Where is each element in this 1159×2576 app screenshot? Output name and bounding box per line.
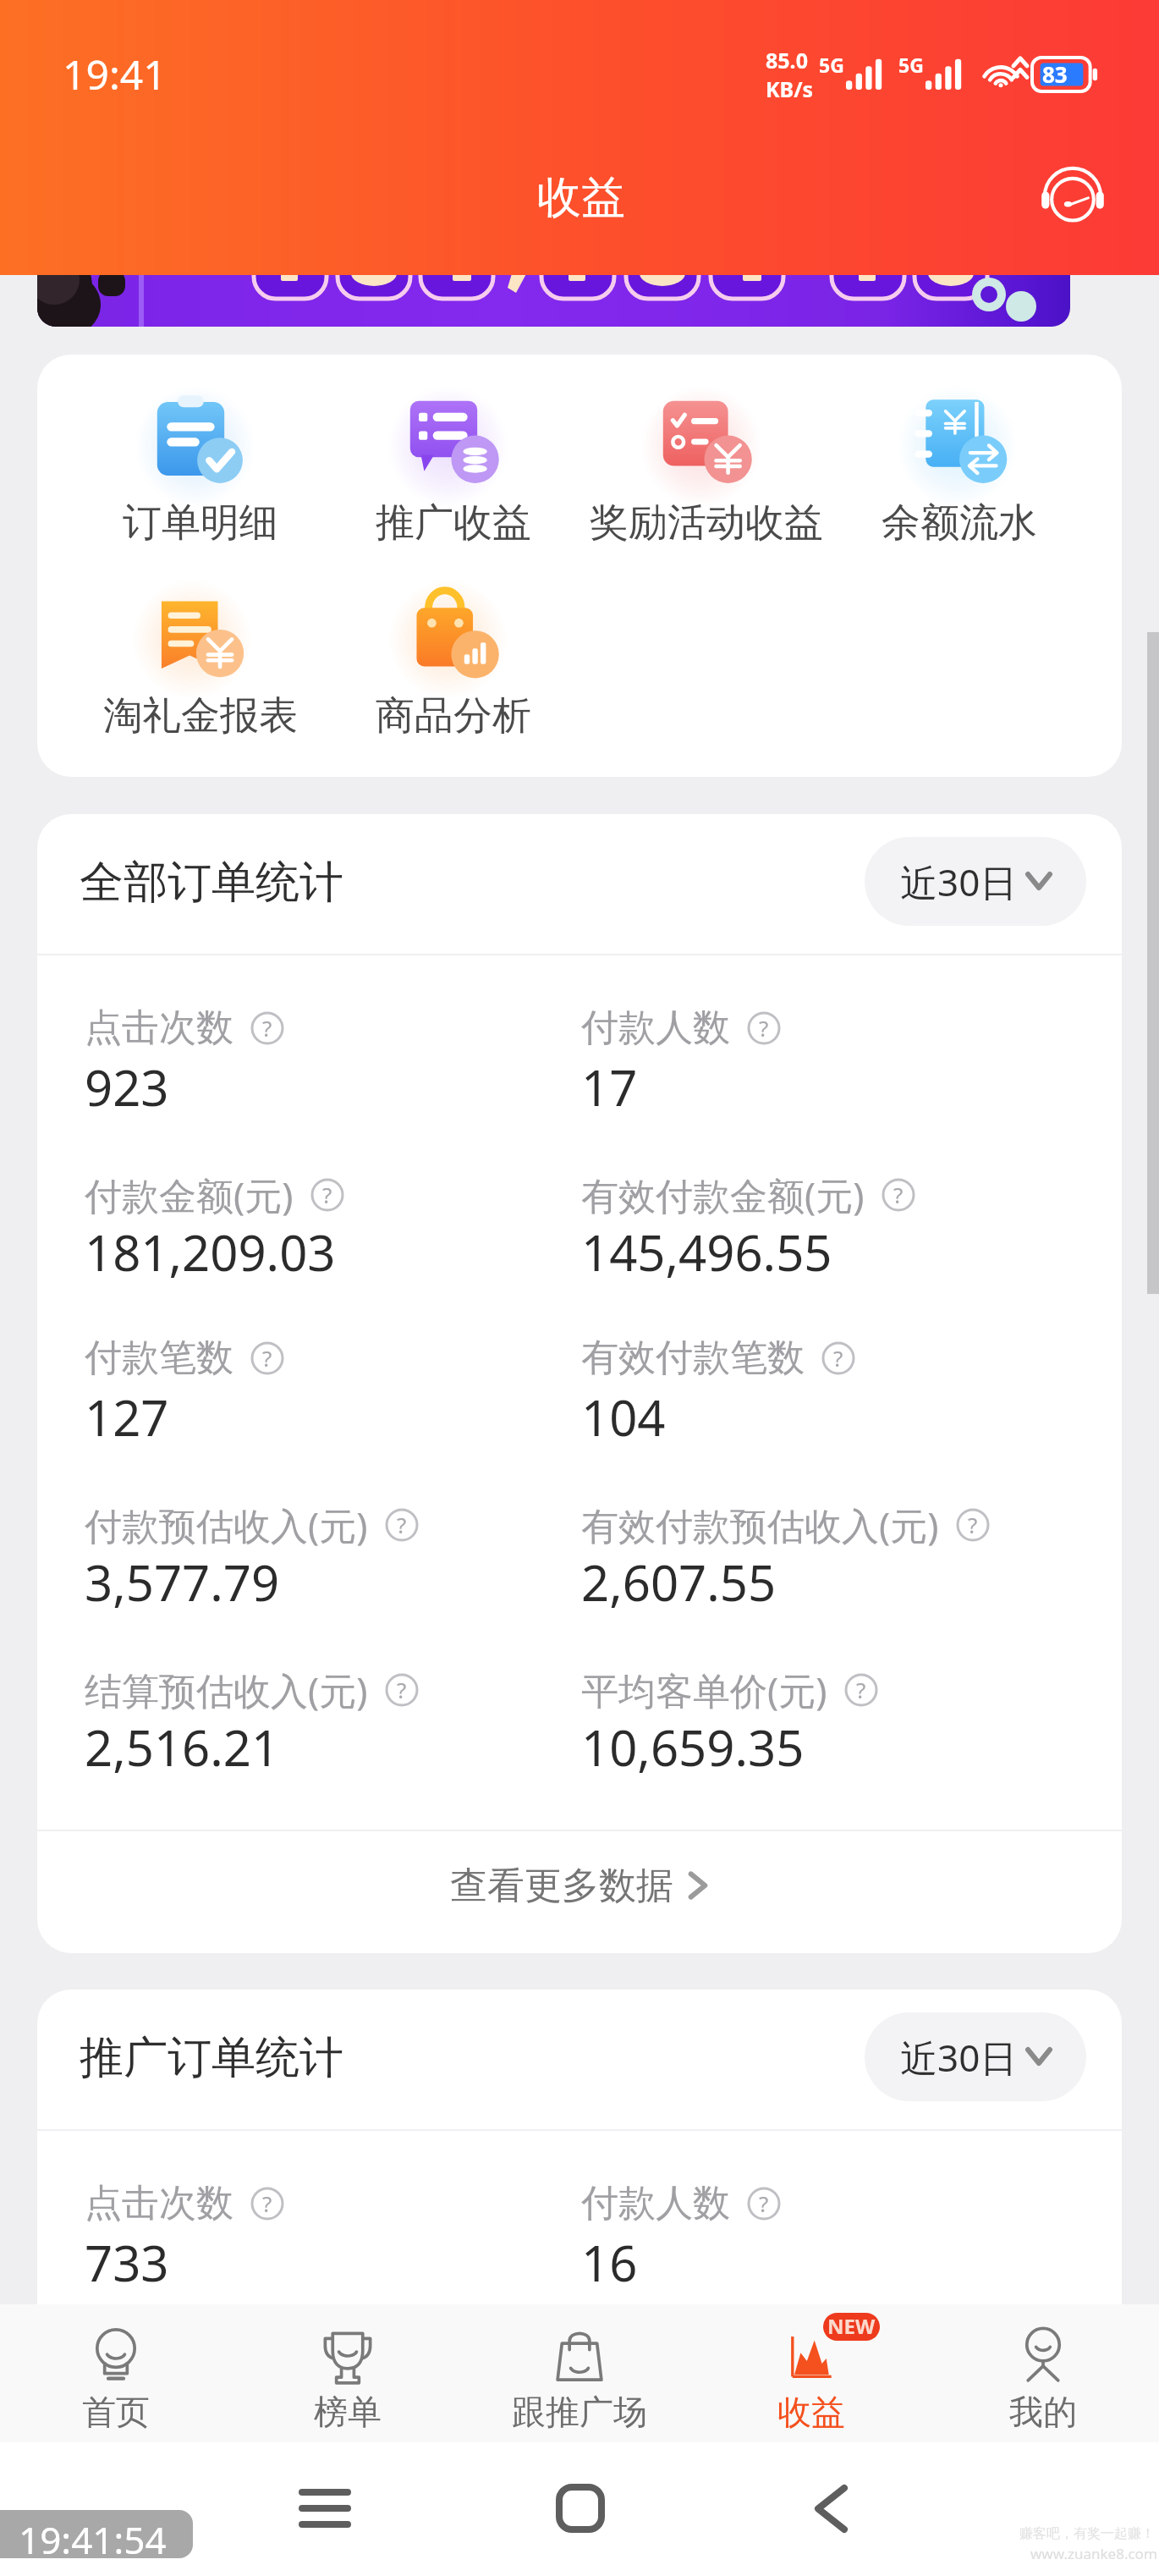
button[interactable]: Info <box>250 1011 284 1045</box>
staticText: 19:41:54 <box>19 2514 167 2558</box>
staticText: 近30日 <box>900 856 1018 907</box>
staticText: ? <box>262 1343 272 1373</box>
staticText: 85.0 <box>766 46 808 74</box>
staticText: ? <box>759 2188 769 2218</box>
staticText: 104 <box>581 1384 666 1450</box>
staticText: 余额流水 <box>882 498 1037 548</box>
staticText: ? <box>833 1343 843 1373</box>
staticText: 19:41 <box>63 47 167 102</box>
staticText: 赚客吧，有奖一起赚！ <box>1019 2525 1155 2542</box>
staticText: ? <box>856 1675 866 1704</box>
button[interactable]: Info <box>385 1508 419 1542</box>
button[interactable]: Info <box>747 2187 781 2221</box>
staticText: ? <box>968 1510 978 1539</box>
staticText: 点击次数 <box>85 2180 233 2226</box>
button[interactable]: Info <box>385 1673 419 1707</box>
staticText: 10,659.35 <box>581 1714 805 1781</box>
staticText: 榜单 <box>314 2391 382 2433</box>
staticText: 733 <box>85 2229 169 2296</box>
staticText: 近30日 <box>900 2032 1018 2083</box>
button[interactable]: 跟推广场 <box>464 2304 695 2442</box>
staticText: 全部订单统计 <box>80 855 343 911</box>
staticText: 5G <box>819 52 844 78</box>
staticText: 923 <box>85 1054 169 1120</box>
staticText: 17 <box>581 1054 638 1120</box>
staticText: 181,209.03 <box>85 1219 336 1285</box>
staticText: ? <box>397 1510 407 1539</box>
button[interactable]: Info <box>310 1178 344 1212</box>
staticText: ? <box>262 2188 272 2218</box>
staticText: 收益 <box>777 2391 845 2433</box>
staticText: www.zuanke8.com <box>1030 2544 1157 2563</box>
button[interactable]: Info <box>882 1178 915 1212</box>
staticText: 有效付款金额(元) <box>581 1170 865 1220</box>
button[interactable]: Info <box>250 1341 284 1375</box>
staticText: 奖励活动收益 <box>590 498 823 548</box>
button[interactable]: Customer service <box>1034 157 1112 235</box>
button[interactable]: 我的 <box>927 2304 1159 2442</box>
staticText: 点击次数 <box>85 1005 233 1051</box>
staticText: 付款人数 <box>581 2180 730 2226</box>
button[interactable]: Info <box>747 1011 781 1045</box>
button[interactable]: Back <box>797 2474 865 2542</box>
staticText: 2,607.55 <box>581 1549 777 1616</box>
button[interactable]: Info <box>956 1508 990 1542</box>
button[interactable]: 查看更多数据 <box>37 1825 1122 1946</box>
button[interactable]: 奖励活动收益 <box>580 387 832 548</box>
staticText: 平均客单价(元) <box>581 1665 827 1715</box>
staticText: KB/s <box>766 74 814 103</box>
staticText: 127 <box>85 1384 169 1450</box>
staticText: 付款笔数 <box>85 1335 233 1381</box>
staticText: ? <box>893 1180 904 1209</box>
staticText: ? <box>759 1013 769 1043</box>
staticText: 16 <box>581 2229 638 2296</box>
staticText: 商品分析 <box>376 691 531 740</box>
staticText: 查看更多数据 <box>450 1863 673 1909</box>
button[interactable]: Info <box>844 1673 878 1707</box>
button[interactable]: 订单明细 <box>74 387 327 548</box>
button[interactable]: 榜单 <box>232 2304 464 2442</box>
staticText: ? <box>262 1013 272 1043</box>
staticText: 首页 <box>82 2391 150 2433</box>
staticText: 跟推广场 <box>512 2391 647 2433</box>
staticText: 5G <box>898 52 924 78</box>
staticText: 2,516.21 <box>85 1714 280 1781</box>
staticText: 结算预估收入(元) <box>85 1665 368 1715</box>
staticText: 推广收益 <box>376 498 531 548</box>
button[interactable]: Info <box>821 1341 855 1375</box>
button[interactable]: 余额流水 <box>833 387 1085 548</box>
staticText: 83 <box>1042 59 1068 89</box>
button[interactable]: NEW <box>695 2304 927 2442</box>
button[interactable]: 商品分析 <box>327 580 579 740</box>
staticText: 付款金额(元) <box>85 1170 294 1220</box>
staticText: 我的 <box>1009 2391 1077 2433</box>
staticText: 订单明细 <box>123 498 278 548</box>
button[interactable]: 淘礼金报表 <box>74 580 327 740</box>
button[interactable]: Info <box>250 2187 284 2221</box>
staticText: ? <box>322 1180 332 1209</box>
button[interactable]: 首页 <box>0 2304 232 2442</box>
button[interactable]: 近30日 <box>865 837 1086 926</box>
staticText: 3,577.79 <box>85 1549 280 1616</box>
staticText: NEW <box>827 2313 876 2340</box>
button[interactable]: Home <box>547 2474 614 2542</box>
staticText: 推广订单统计 <box>80 2030 343 2086</box>
button[interactable]: 推广收益 <box>327 387 579 548</box>
staticText: 淘礼金报表 <box>103 691 298 740</box>
staticText: 收益 <box>537 170 625 226</box>
staticText: 145,496.55 <box>581 1219 832 1285</box>
staticText: 有效付款预估收入(元) <box>581 1500 939 1550</box>
staticText: 有效付款笔数 <box>581 1335 805 1381</box>
button[interactable]: Recent apps <box>291 2474 359 2542</box>
staticText: ? <box>397 1675 407 1704</box>
button[interactable]: 近30日 <box>865 2012 1086 2101</box>
staticText: 付款人数 <box>581 1005 730 1051</box>
staticText: 付款预估收入(元) <box>85 1500 368 1550</box>
